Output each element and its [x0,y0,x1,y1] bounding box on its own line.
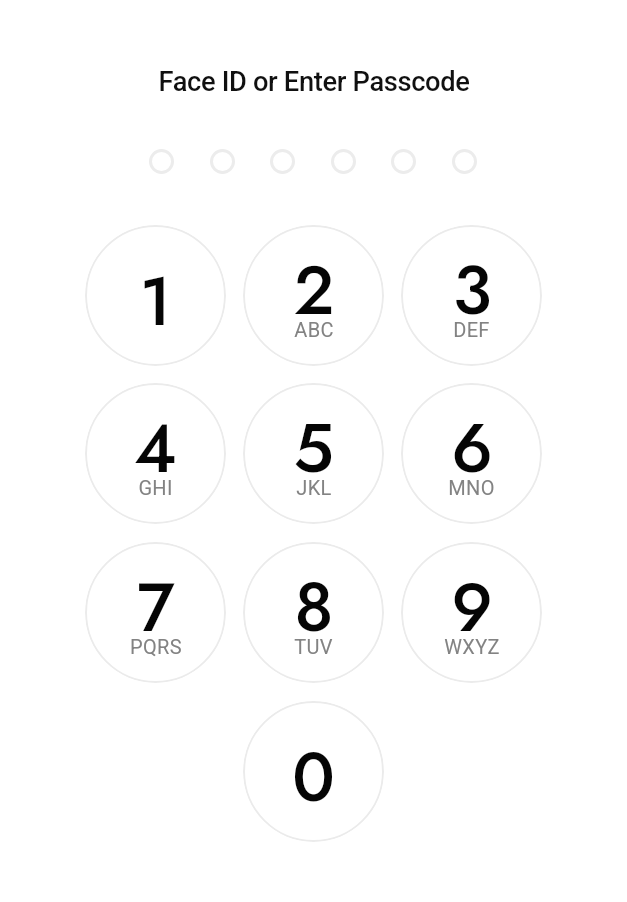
staticText: 0 [292,728,335,826]
staticText: DEF [453,318,490,341]
button[interactable]: 8 [243,542,384,683]
button[interactable]: 6 [401,383,542,524]
button[interactable]: 3 [401,225,542,366]
staticText: 9 [451,558,493,656]
staticText: 4 [134,399,177,497]
other: Passcode, 0 of 6 digits entered [0,0,627,902]
staticText: 6 [451,399,493,497]
button[interactable]: 4 [85,383,226,524]
button[interactable]: 9 [401,542,542,683]
button[interactable]: 5 [243,383,384,524]
staticText: TUV [294,635,333,658]
staticText: PQRS [130,635,182,658]
staticText: JKL [296,476,332,499]
staticText: Face ID or Enter Passcode [158,66,470,98]
staticText: 8 [294,558,334,656]
staticText: 7 [137,558,175,656]
staticText: 5 [293,399,334,497]
button[interactable]: 1 [85,225,226,366]
staticText: 1 [139,252,172,350]
button[interactable]: 2 [243,225,384,366]
button[interactable]: 7 [85,542,226,683]
staticText: 2 [293,241,335,339]
staticText: WXYZ [444,635,500,658]
staticText: GHI [138,476,173,499]
staticText: ABC [294,318,334,341]
staticText: MNO [448,476,495,499]
staticText: 3 [452,241,492,339]
button[interactable]: 0 [243,701,384,842]
